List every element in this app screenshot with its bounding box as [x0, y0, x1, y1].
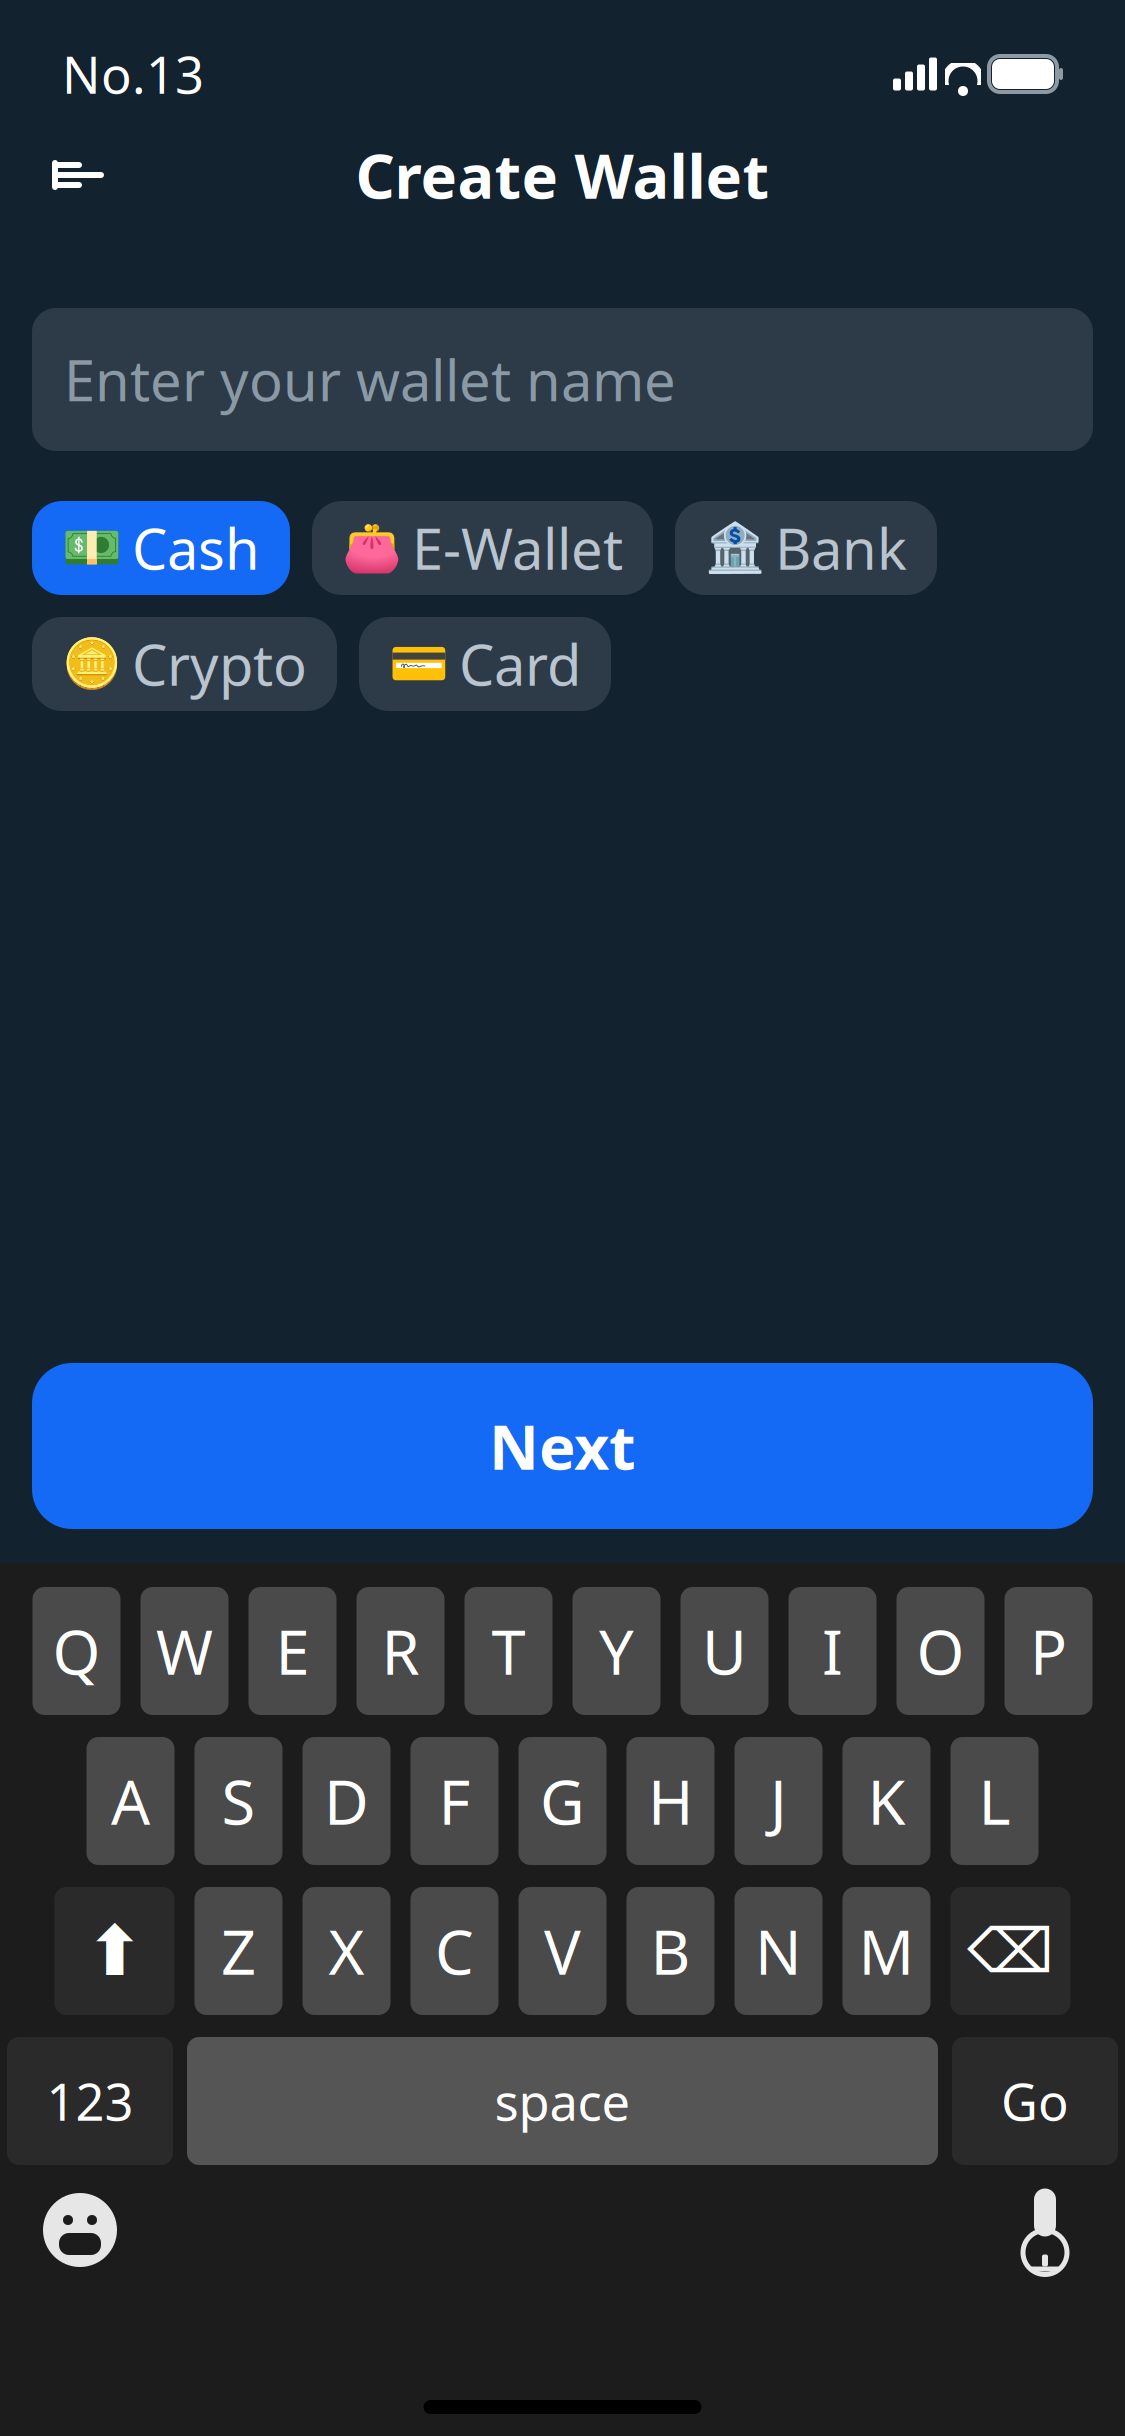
button[interactable]: 123 [7, 2037, 173, 2165]
staticText: W [156, 1610, 213, 1692]
staticText: E [275, 1610, 309, 1692]
staticText: Crypto [132, 627, 307, 701]
button[interactable]: P [1004, 1587, 1092, 1715]
staticText: Enter your wallet name [64, 342, 676, 417]
button[interactable]: Go [952, 2037, 1118, 2165]
button[interactable]: Emoji keyboard [40, 2190, 120, 2270]
staticText: I [822, 1610, 843, 1692]
staticText: N [755, 1910, 802, 1992]
button[interactable]: R [356, 1587, 444, 1715]
button[interactable]: Shift [54, 1887, 174, 2015]
staticText: M [858, 1910, 914, 1992]
staticText: S [221, 1760, 255, 1842]
staticText: F [438, 1760, 470, 1842]
button[interactable]: 🪙 [32, 617, 337, 711]
button[interactable]: O [896, 1587, 984, 1715]
staticText: 💳 [389, 637, 449, 691]
staticText: J [770, 1760, 787, 1842]
staticText: 123 [46, 2067, 133, 2135]
button[interactable]: space [187, 2037, 938, 2165]
staticText: E-Wallet [412, 511, 623, 585]
button[interactable]: 🏦 [675, 501, 937, 595]
button[interactable]: 💵 [32, 501, 290, 595]
staticText: O [916, 1610, 964, 1692]
button[interactable]: Delete [950, 1887, 1070, 2015]
staticText: R [381, 1610, 419, 1692]
staticText: V [544, 1910, 581, 1992]
button[interactable]: Back [30, 127, 126, 223]
button[interactable]: Dictation [1005, 2190, 1085, 2270]
button[interactable]: N [734, 1887, 822, 2015]
button[interactable]: A [86, 1737, 174, 1865]
staticText: Y [599, 1610, 634, 1692]
button[interactable]: L [950, 1737, 1038, 1865]
button[interactable]: F [410, 1737, 498, 1865]
staticText: H [648, 1760, 693, 1842]
button[interactable]: Y [572, 1587, 660, 1715]
staticText: D [324, 1760, 369, 1842]
staticText: X [328, 1910, 364, 1992]
button[interactable]: Enter your wallet name [32, 308, 1093, 451]
staticText: G [540, 1760, 585, 1842]
staticText: 👛 [342, 521, 402, 575]
staticText: B [650, 1910, 690, 1992]
staticText: ⌫ [967, 1916, 1054, 1986]
button[interactable]: E [248, 1587, 336, 1715]
button[interactable]: Next [32, 1363, 1093, 1529]
staticText: No.13 [62, 40, 204, 108]
button[interactable]: Z [194, 1887, 282, 2015]
staticText: Cash [132, 511, 260, 585]
staticText: C [435, 1910, 474, 1992]
staticText: Card [459, 627, 581, 701]
button[interactable]: C [410, 1887, 498, 2015]
button[interactable]: J [734, 1737, 822, 1865]
button[interactable]: Q [32, 1587, 120, 1715]
button[interactable]: G [518, 1737, 606, 1865]
staticText: 💵 [62, 521, 122, 575]
button[interactable]: U [680, 1587, 768, 1715]
staticText: 🪙 [62, 637, 122, 691]
staticText: Next [489, 1405, 636, 1487]
staticText: ⬆ [85, 1912, 143, 1990]
staticText: 🏦 [705, 521, 765, 575]
staticText: L [978, 1760, 1010, 1842]
staticText: Bank [775, 511, 907, 585]
staticText: space [494, 2067, 630, 2135]
button[interactable]: S [194, 1737, 282, 1865]
staticText: Q [52, 1610, 100, 1692]
button[interactable]: W [140, 1587, 228, 1715]
button[interactable]: M [842, 1887, 930, 2015]
button[interactable]: 💳 [359, 617, 611, 711]
staticText: K [867, 1760, 905, 1842]
button[interactable]: D [302, 1737, 390, 1865]
staticText: T [491, 1610, 525, 1692]
staticText: Go [1001, 2067, 1069, 2135]
button[interactable]: I [788, 1587, 876, 1715]
staticText: U [702, 1610, 747, 1692]
staticText: A [111, 1760, 150, 1842]
button[interactable]: H [626, 1737, 714, 1865]
button[interactable]: B [626, 1887, 714, 2015]
staticText: Z [221, 1910, 256, 1992]
button[interactable]: 👛 [312, 501, 653, 595]
button[interactable]: K [842, 1737, 930, 1865]
staticText: P [1030, 1610, 1067, 1692]
button[interactable]: T [464, 1587, 552, 1715]
button[interactable]: V [518, 1887, 606, 2015]
button[interactable]: X [302, 1887, 390, 2015]
staticText: Create Wallet [355, 134, 769, 216]
